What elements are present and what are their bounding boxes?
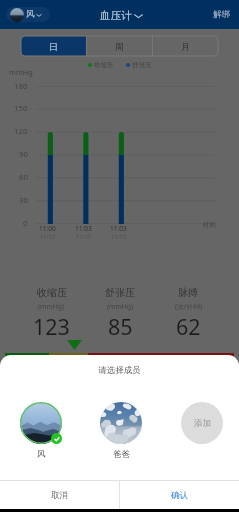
staticText: 确认 xyxy=(171,490,188,501)
staticText: 85 xyxy=(108,312,133,341)
button[interactable]: 确认 xyxy=(120,481,239,509)
staticText: 11/17 xyxy=(111,233,126,241)
button[interactable]: 血压计 xyxy=(100,9,145,22)
staticText: 舒张压 xyxy=(105,286,135,299)
staticText: 11:03 xyxy=(110,224,127,233)
staticText: 周 xyxy=(115,41,124,52)
staticText: 风 xyxy=(37,449,46,460)
staticText: 90 xyxy=(19,149,28,160)
staticText: 脉搏 xyxy=(178,286,198,299)
staticText: 月 xyxy=(181,41,190,52)
staticText: 11/17 xyxy=(76,233,91,241)
button[interactable]: 周 xyxy=(87,36,152,56)
staticText: 180 xyxy=(14,81,28,92)
staticText: 添加 xyxy=(194,418,211,429)
staticText: 解绑 xyxy=(213,9,230,20)
staticText: 11:03 xyxy=(75,224,92,233)
staticText: 60 xyxy=(19,172,28,183)
staticText: 风 xyxy=(26,9,35,20)
button[interactable]: 风 xyxy=(10,7,48,22)
button[interactable]: 日 xyxy=(21,36,86,56)
staticText: 123 xyxy=(33,312,70,341)
button[interactable]: 解绑 xyxy=(213,9,230,20)
staticText: 150 xyxy=(14,103,28,114)
staticText: 62 xyxy=(176,312,201,341)
staticText: 血压计 xyxy=(100,9,132,22)
button[interactable]: 月 xyxy=(153,36,218,56)
button[interactable] xyxy=(100,402,142,444)
staticText: (mmHg) xyxy=(107,302,134,311)
staticText: 120 xyxy=(14,126,28,137)
staticText: (次/分钟) xyxy=(175,302,202,311)
staticText: 时间 xyxy=(203,221,216,229)
staticText: 11:00 xyxy=(39,224,56,233)
staticText: 日 xyxy=(49,41,58,52)
staticText: 30 xyxy=(19,195,28,206)
staticText: (mmHg) xyxy=(38,302,65,311)
button[interactable] xyxy=(20,402,62,444)
staticText: 请选择成员 xyxy=(0,365,239,376)
staticText: mmHg xyxy=(9,67,33,77)
button[interactable]: 添加 xyxy=(181,402,223,444)
staticText: 爸爸 xyxy=(113,449,130,460)
button[interactable]: 取消 xyxy=(0,481,119,509)
staticText: 0 xyxy=(23,218,28,229)
staticText: 取消 xyxy=(51,490,68,501)
staticText: 舒张压 xyxy=(132,61,152,69)
staticText: 11/17 xyxy=(40,233,55,241)
staticText: 收缩压 xyxy=(37,286,67,299)
staticText: 收缩压 xyxy=(94,61,114,69)
